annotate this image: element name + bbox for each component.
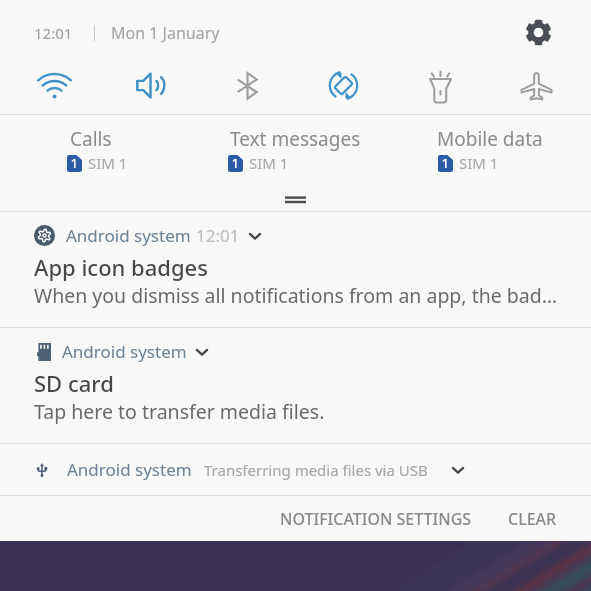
button[interactable]: Text messages [197, 115, 394, 188]
staticText: Mobile data [437, 126, 543, 152]
staticText: Text messages [230, 126, 361, 152]
staticText: SIM 1 [88, 153, 128, 173]
staticText: 12:01 [196, 224, 240, 247]
staticText: Android system [67, 458, 192, 481]
staticText: Android system [62, 340, 187, 363]
button[interactable]: Airplane mode [511, 60, 561, 110]
staticText: 12:01 [34, 23, 73, 43]
staticText: SIM 1 [459, 153, 499, 173]
button[interactable]: Calls [0, 115, 197, 188]
staticText: App icon badges [34, 252, 208, 282]
button[interactable]: NOTIFICATION SETTINGS [272, 502, 480, 536]
button[interactable]: Wi-Fi [29, 60, 79, 110]
button[interactable]: Auto rotate [318, 60, 368, 110]
staticText: SD card [34, 368, 114, 398]
button[interactable]: Flashlight [415, 60, 465, 110]
button[interactable]: Mobile data [394, 115, 591, 188]
staticText: SIM 1 [249, 153, 289, 173]
staticText: Calls [70, 126, 112, 152]
staticText: When you dismiss all notifications from … [34, 282, 558, 309]
staticText: Mon 1 January [111, 22, 220, 44]
staticText: CLEAR [508, 508, 557, 530]
button[interactable]: Android system [0, 444, 591, 495]
button[interactable]: Android system [0, 212, 591, 327]
button[interactable]: Bluetooth [222, 60, 272, 110]
button[interactable]: Settings [521, 15, 555, 49]
button[interactable]: Android system [0, 328, 591, 443]
button[interactable]: Sound [125, 60, 175, 110]
staticText: Tap here to transfer media files. [34, 398, 325, 425]
staticText: Transferring media files via USB [204, 460, 428, 480]
staticText: NOTIFICATION SETTINGS [280, 508, 472, 530]
button[interactable]: CLEAR [500, 502, 565, 536]
staticText: Android system [66, 224, 191, 247]
